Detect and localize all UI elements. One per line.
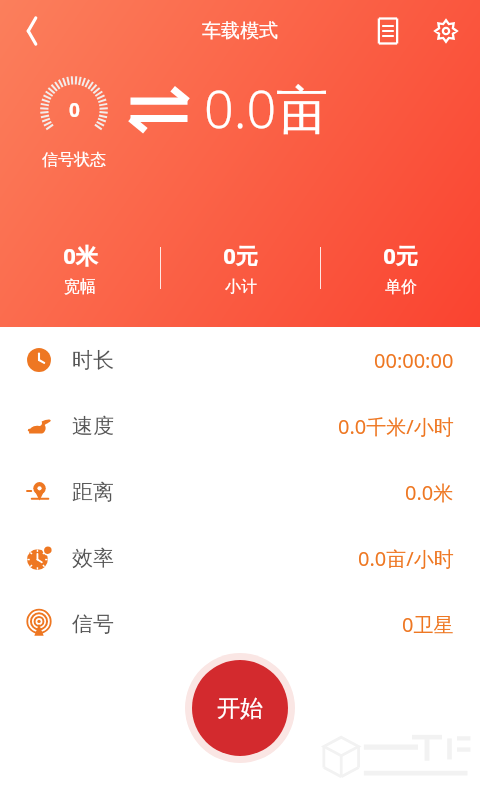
staticText: 车载模式 [202,19,278,43]
button[interactable]: 速度 [0,393,480,459]
staticText: 小计 [225,277,257,297]
button[interactable]: 开始 [185,653,295,763]
button[interactable]: Records [364,7,412,55]
staticText: 0.0米 [405,479,454,506]
staticText: 信号 [72,611,114,637]
staticText: 0.0亩/小时 [358,545,454,572]
staticText: 信号状态 [42,150,106,170]
staticText: 时长 [72,347,114,373]
staticText: 效率 [72,545,114,571]
button[interactable]: Back [8,7,56,55]
staticText: 0卫星 [402,611,454,638]
staticText: 距离 [72,479,114,505]
staticText: 宽幅 [64,277,96,297]
staticText: 00:00:00 [374,347,454,374]
button[interactable]: 距离 [0,459,480,525]
staticText: 0 [69,97,80,123]
staticText: 单价 [385,277,417,297]
staticText: 0元 [383,240,418,270]
button[interactable]: Settings [422,7,470,55]
button[interactable]: 效率 [0,525,480,591]
button[interactable]: 信号 [0,591,480,657]
staticText: 0米 [63,240,98,270]
staticText: 0元 [223,240,258,270]
button[interactable]: 时长 [0,327,480,393]
staticText: 开始 [217,694,263,723]
staticText: 速度 [72,413,114,439]
staticText: 0.0千米/小时 [338,413,454,440]
staticText: 0.0亩 [204,72,329,143]
